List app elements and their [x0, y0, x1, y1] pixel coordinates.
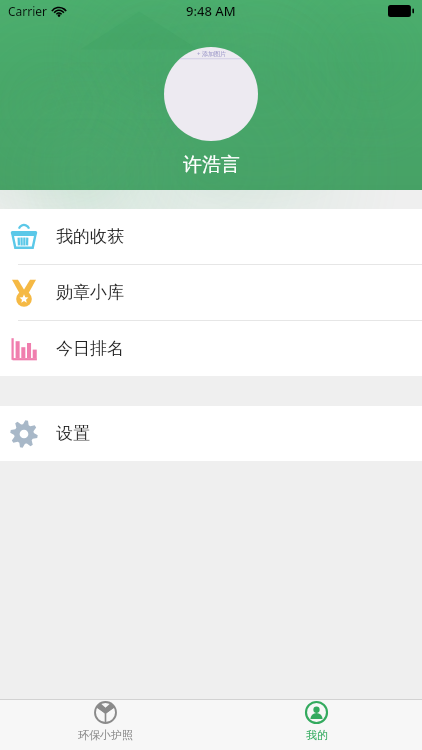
button[interactable]: Profile photo, add image: [164, 47, 258, 141]
staticText: 勋章小库: [56, 282, 124, 303]
button[interactable]: 勋章小库: [0, 265, 422, 320]
button[interactable]: 今日排名: [0, 321, 422, 376]
staticText: 今日排名: [56, 338, 124, 359]
staticText: 我的收获: [56, 226, 124, 247]
staticText: 设置: [56, 423, 90, 444]
staticText: 9:48 AM: [186, 2, 236, 20]
button[interactable]: Mine: [211, 700, 422, 742]
staticText: + 添加图片: [197, 50, 226, 58]
button[interactable]: 我的收获: [0, 209, 422, 264]
staticText: Carrier: [8, 3, 48, 19]
button[interactable]: 设置: [0, 406, 422, 461]
staticText: 许浩言: [183, 153, 240, 177]
button[interactable]: Eco passport: [0, 700, 211, 742]
staticText: 环保小护照: [78, 728, 133, 742]
staticText: 我的: [306, 728, 328, 742]
